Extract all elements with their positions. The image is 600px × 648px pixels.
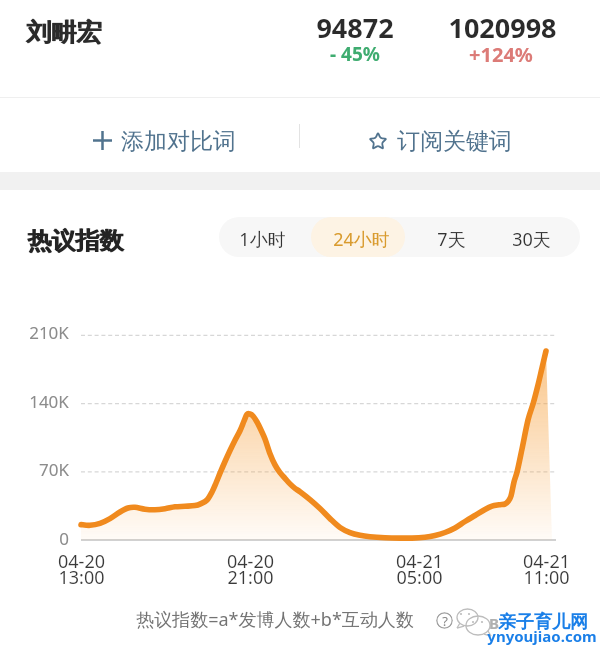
staticText: 0	[59, 527, 69, 550]
button[interactable]: Help	[436, 612, 453, 629]
staticText: 刘畊宏	[26, 17, 101, 48]
staticText: 7天	[437, 227, 466, 252]
staticText: 1小时	[239, 227, 286, 252]
staticText: 亲子育儿网	[498, 611, 588, 634]
staticText: ?	[442, 612, 448, 629]
staticText: 30天	[512, 227, 551, 252]
staticText: 11:00	[523, 565, 570, 590]
staticText: 热议指数	[27, 226, 123, 256]
staticText: 04-21	[396, 549, 443, 574]
staticText: 刘畊宏	[27, 17, 102, 48]
staticText: 热议指数=a*发博人数+b*互动人数	[136, 607, 414, 632]
staticText: 24小时	[333, 227, 390, 252]
staticText: +124%	[469, 41, 533, 68]
button[interactable]: 1小时	[216, 217, 308, 257]
staticText: 94872	[316, 9, 394, 46]
staticText: 1020998	[448, 9, 557, 46]
staticText: 04-21	[523, 549, 570, 574]
staticText: 04-20	[227, 549, 274, 574]
button[interactable]: 7天	[405, 217, 497, 257]
staticText: B	[489, 613, 499, 633]
staticText: ynyoujiao.com	[487, 626, 597, 646]
staticText: 热议指数	[28, 226, 124, 256]
staticText: 04-20	[58, 549, 105, 574]
staticText: 05:00	[396, 565, 443, 590]
staticText: 订阅关键词	[397, 127, 512, 156]
button[interactable]: 24小时	[311, 217, 405, 257]
staticText: 21:00	[227, 565, 274, 590]
staticText: 140K	[29, 390, 69, 413]
staticText: 13:00	[58, 565, 105, 590]
button[interactable]: 订阅关键词	[300, 98, 600, 172]
staticText: 210K	[29, 321, 69, 344]
staticText: 添加对比词	[121, 127, 236, 156]
button[interactable]: 添加对比词	[0, 98, 299, 172]
button[interactable]: 30天	[486, 217, 577, 257]
staticText: 70K	[39, 458, 69, 481]
staticText: - 45%	[330, 41, 380, 67]
